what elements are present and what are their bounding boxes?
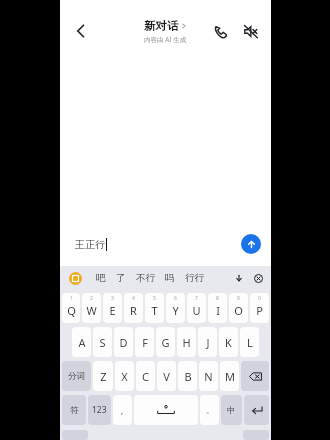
button[interactable]: B — [178, 361, 197, 391]
button[interactable]: 2 — [82, 293, 101, 323]
button[interactable]: Z — [93, 361, 113, 391]
staticText: 5 — [153, 295, 156, 302]
staticText: D — [119, 335, 128, 350]
staticText: P — [256, 303, 263, 318]
button[interactable]: 分词 — [62, 361, 91, 391]
button[interactable]: N — [199, 361, 218, 391]
staticText: 分词 — [68, 371, 85, 382]
staticText: U — [192, 303, 201, 318]
button[interactable]: 了 — [111, 270, 131, 286]
button[interactable]: 。 — [200, 395, 219, 425]
staticText: G — [161, 335, 170, 350]
staticText: B — [184, 369, 192, 384]
staticText: 新对话 — [144, 19, 179, 33]
button[interactable]: 0 — [250, 293, 269, 323]
staticText: N — [204, 369, 213, 384]
button[interactable]: Enter — [244, 395, 269, 425]
staticText: , — [121, 405, 124, 416]
staticText: W — [86, 303, 97, 318]
button[interactable]: Space — [134, 395, 198, 425]
button[interactable]: 王正行 — [65, 227, 266, 261]
button[interactable]: D — [114, 327, 133, 357]
staticText: 1 — [70, 295, 73, 302]
staticText: 9 — [237, 295, 240, 302]
button[interactable]: Input method logo — [65, 268, 85, 288]
staticText: 8 — [216, 295, 219, 302]
staticText: H — [182, 335, 191, 350]
button[interactable]: Back — [64, 14, 98, 48]
staticText: 3 — [111, 295, 114, 302]
button[interactable]: 吧 — [91, 270, 111, 286]
button[interactable]: J — [198, 327, 217, 357]
button[interactable]: 5 — [145, 293, 164, 323]
staticText: S — [99, 335, 106, 350]
staticText: 123 — [92, 404, 107, 416]
staticText: 2 — [90, 295, 93, 302]
staticText: 王正行 — [75, 238, 105, 251]
button[interactable]: , — [113, 395, 132, 425]
button[interactable]: V — [157, 361, 176, 391]
staticText: Z — [100, 369, 107, 384]
button[interactable]: 9 — [229, 293, 248, 323]
button[interactable]: 不行 — [131, 270, 160, 286]
button[interactable]: Backspace — [241, 361, 269, 391]
staticText: V — [163, 369, 170, 384]
button[interactable]: Send — [241, 234, 261, 254]
staticText: 不行 — [136, 272, 155, 284]
staticText: 7 — [195, 295, 198, 302]
button[interactable]: 6 — [166, 293, 185, 323]
button[interactable]: 3 — [103, 293, 122, 323]
staticText: 内容由 AI 生成 — [144, 35, 187, 44]
button[interactable]: 123 — [88, 395, 111, 425]
button[interactable]: L — [240, 327, 259, 357]
staticText: 。 — [206, 405, 214, 415]
staticText: Q — [67, 303, 76, 318]
staticText: J — [206, 335, 210, 350]
staticText: 行行 — [185, 272, 204, 284]
button[interactable]: 新对话 — [138, 17, 193, 46]
staticText: A — [78, 335, 86, 350]
staticText: Y — [172, 303, 179, 318]
staticText: 中 — [227, 405, 236, 416]
button[interactable]: G — [156, 327, 175, 357]
button[interactable]: 行行 — [180, 270, 209, 286]
staticText: C — [142, 369, 149, 384]
staticText: I — [216, 303, 220, 318]
button[interactable]: 4 — [124, 293, 143, 323]
staticText: E — [109, 303, 116, 318]
button[interactable]: 7 — [187, 293, 206, 323]
button[interactable]: H — [177, 327, 196, 357]
button[interactable]: Call — [205, 16, 235, 46]
staticText: T — [151, 303, 158, 318]
button[interactable]: 8 — [208, 293, 227, 323]
staticText: 了 — [116, 272, 126, 284]
staticText: M — [225, 369, 235, 384]
staticText: 4 — [132, 295, 135, 302]
button[interactable]: 符 — [62, 395, 86, 425]
button[interactable]: Close keyboard — [250, 270, 266, 286]
button[interactable]: K — [219, 327, 238, 357]
button[interactable]: 吗 — [160, 270, 180, 286]
staticText: 吧 — [96, 272, 106, 284]
staticText: L — [247, 335, 253, 350]
button[interactable]: X — [115, 361, 134, 391]
staticText: 6 — [174, 295, 177, 302]
staticText: 符 — [70, 405, 79, 416]
button[interactable]: C — [136, 361, 155, 391]
staticText: F — [142, 335, 148, 350]
button[interactable]: M — [220, 361, 239, 391]
staticText: R — [130, 303, 137, 318]
staticText: 吗 — [165, 272, 175, 284]
button[interactable]: S — [93, 327, 112, 357]
button[interactable]: F — [135, 327, 154, 357]
button[interactable]: 中 — [221, 395, 242, 425]
staticText: 0 — [258, 295, 261, 302]
button[interactable]: 1 — [62, 293, 80, 323]
staticText: K — [225, 335, 232, 350]
button[interactable]: Mute — [235, 16, 265, 46]
staticText: O — [234, 303, 243, 318]
button[interactable]: A — [72, 327, 91, 357]
button[interactable]: More candidates — [231, 270, 247, 286]
